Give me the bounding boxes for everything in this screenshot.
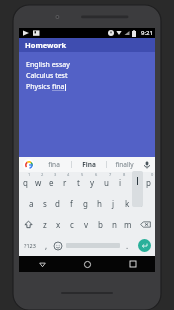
button[interactable]: Back	[19, 256, 65, 272]
staticText: Physics	[26, 82, 52, 92]
button[interactable]: Emoji	[52, 235, 64, 256]
staticText: 4	[67, 172, 70, 177]
button[interactable]: d	[51, 193, 64, 214]
button[interactable]: h	[92, 193, 106, 214]
staticText: n	[112, 219, 117, 230]
staticText: m	[124, 219, 132, 230]
staticText: j	[112, 198, 115, 209]
button[interactable]: w	[32, 172, 45, 193]
staticText: fina	[52, 82, 65, 92]
button[interactable]: c	[65, 214, 79, 235]
staticText: 5	[81, 172, 84, 177]
button[interactable]: g	[78, 193, 92, 214]
staticText: ,	[45, 240, 48, 251]
staticText: b	[98, 219, 103, 230]
staticText: c	[70, 219, 74, 230]
staticText: t	[77, 177, 80, 188]
button[interactable]: ,	[40, 235, 52, 256]
staticText: a	[29, 198, 34, 209]
button[interactable]: .	[121, 235, 133, 256]
staticText: 8	[123, 172, 126, 177]
button[interactable]: v	[79, 214, 93, 235]
button[interactable]: f	[64, 193, 78, 214]
staticText: Homework	[25, 40, 67, 50]
button[interactable]: n	[107, 214, 121, 235]
button[interactable]: u	[99, 172, 113, 193]
button[interactable]: Google search	[23, 159, 34, 170]
button[interactable]: Home	[65, 256, 110, 272]
staticText: Fina	[82, 160, 96, 169]
button[interactable]: o	[127, 172, 141, 193]
button[interactable]: s	[38, 193, 51, 214]
button[interactable]: Shift	[19, 214, 38, 235]
button[interactable]	[64, 235, 121, 256]
button[interactable]: ?123	[19, 235, 40, 256]
button[interactable]: a	[25, 193, 38, 214]
button[interactable]: Fina	[72, 157, 106, 172]
button[interactable]: m	[121, 214, 135, 235]
staticText: l	[140, 198, 143, 209]
button[interactable]: z	[38, 214, 51, 235]
button[interactable]: t	[71, 172, 85, 193]
button[interactable]: x	[51, 214, 65, 235]
staticText: finally	[115, 160, 134, 169]
staticText: r	[63, 177, 67, 188]
button[interactable]: q	[19, 172, 32, 193]
staticText: z	[43, 219, 47, 230]
staticText: h	[97, 198, 102, 209]
staticText: p	[146, 177, 151, 188]
button[interactable]: l	[134, 193, 148, 214]
staticText: Calculus test	[26, 71, 68, 81]
staticText: u	[104, 177, 109, 188]
button[interactable]: k	[120, 193, 134, 214]
staticText: fina	[48, 160, 60, 169]
staticText: k	[125, 198, 130, 209]
staticText: d	[55, 198, 60, 209]
button[interactable]: e	[45, 172, 58, 193]
staticText: 2	[41, 172, 44, 177]
staticText: 3	[54, 172, 57, 177]
staticText: v	[84, 219, 89, 230]
staticText: 6	[95, 172, 98, 177]
staticText: q	[23, 177, 28, 188]
staticText: e	[49, 177, 54, 188]
button[interactable]: fina	[37, 157, 71, 172]
button[interactable]: b	[93, 214, 107, 235]
staticText: .	[126, 240, 129, 251]
staticText: ?123	[24, 242, 36, 249]
staticText: 7	[109, 172, 112, 177]
staticText: g	[83, 198, 88, 209]
button[interactable]: y	[85, 172, 99, 193]
staticText: 9:21	[141, 29, 153, 37]
staticText: English essay	[26, 60, 70, 70]
button[interactable]: Homework	[19, 38, 155, 52]
staticText: 0	[151, 172, 154, 177]
staticText: w	[35, 177, 42, 188]
staticText: f	[70, 198, 73, 209]
staticText: x	[56, 219, 61, 230]
staticText: i	[119, 177, 122, 188]
button[interactable]: Voice input	[141, 159, 152, 170]
button[interactable]: i	[113, 172, 127, 193]
button[interactable]: r	[58, 172, 71, 193]
button[interactable]: Enter	[138, 239, 151, 252]
button[interactable]: finally	[107, 157, 141, 172]
button[interactable]: Backspace	[135, 214, 155, 235]
staticText: 1	[28, 172, 31, 177]
staticText: s	[43, 198, 47, 209]
button[interactable]: j	[106, 193, 120, 214]
button[interactable]: Recent apps	[110, 256, 155, 272]
button[interactable]: p	[141, 172, 155, 193]
button[interactable]: English essay	[19, 52, 155, 157]
staticText: y	[90, 177, 95, 188]
